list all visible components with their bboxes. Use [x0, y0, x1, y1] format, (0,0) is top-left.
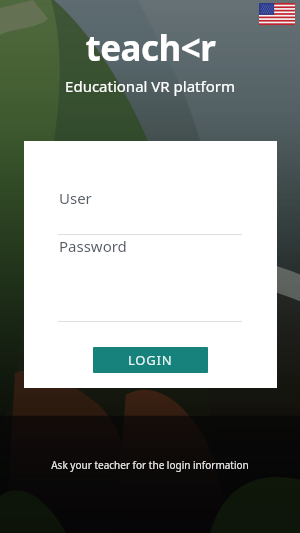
staticText: User: [59, 188, 92, 208]
staticText: teach<r: [85, 24, 216, 72]
button[interactable]: LOGIN: [93, 347, 208, 373]
staticText: Password: [59, 236, 127, 256]
staticText: Educational VR platform: [65, 76, 235, 96]
button[interactable]: Change language: [259, 3, 295, 25]
staticText: Ask your teacher for the login informati…: [12, 458, 288, 472]
staticText: LOGIN: [128, 351, 173, 369]
